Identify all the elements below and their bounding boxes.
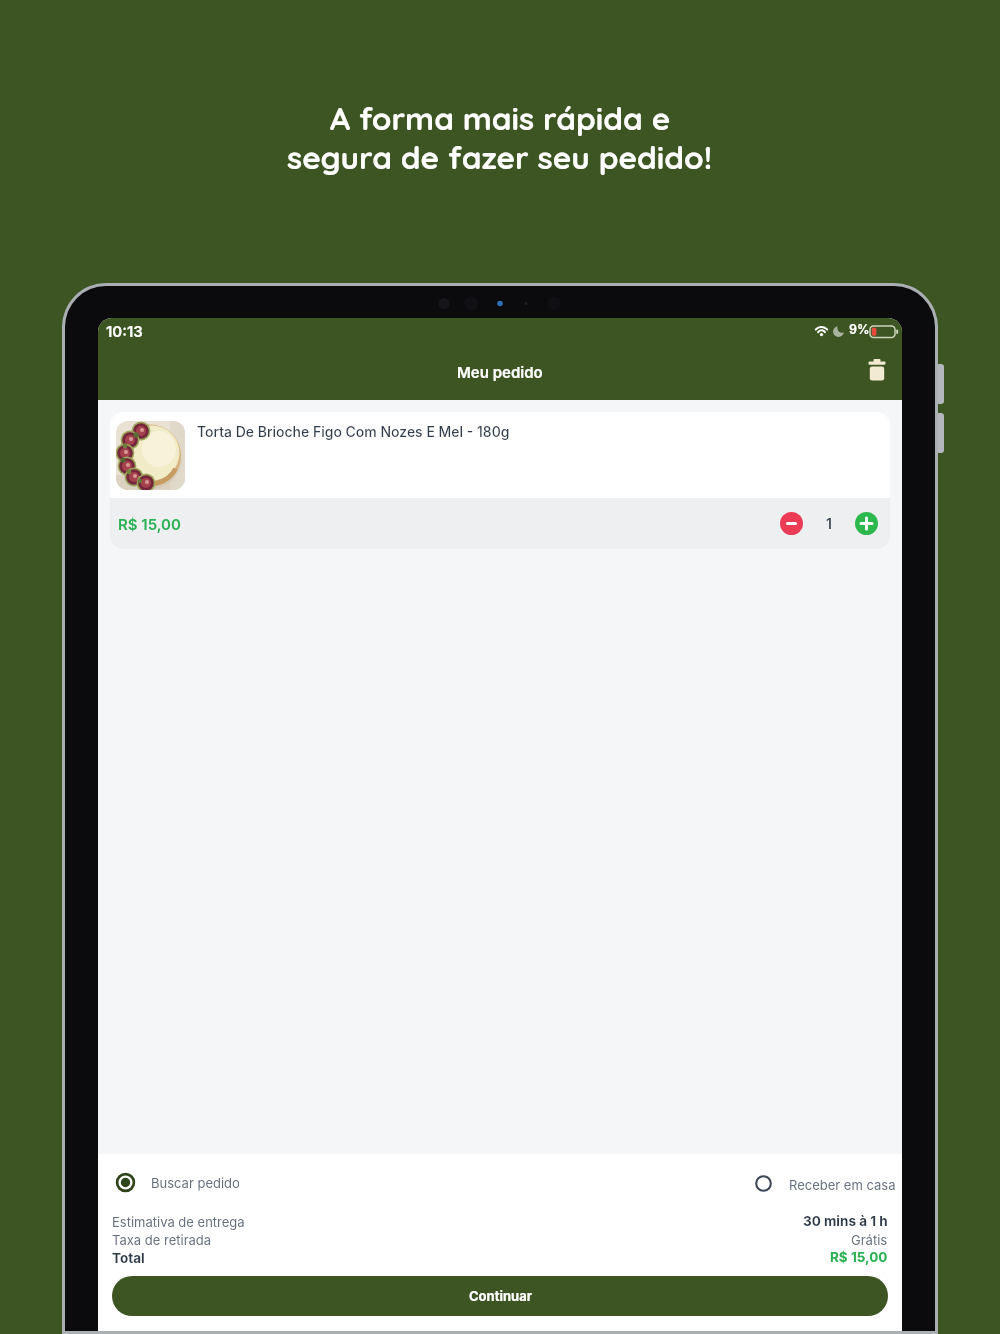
button[interactable]: Continuar [112,1276,888,1316]
staticText: Taxa de retirada [112,1232,212,1248]
staticText: R$ 15,00 [118,515,181,533]
staticText: 1 [826,515,832,532]
button[interactable] [855,512,878,535]
staticText: A forma mais rápida e [330,98,671,137]
button[interactable] [780,512,803,535]
staticText: Buscar pedido [151,1175,240,1191]
staticText: Torta De Brioche Figo Com Nozes E Mel - … [197,423,510,440]
staticText: 30 mins à 1 h [803,1213,888,1229]
staticText: Continuar [469,1288,532,1304]
staticText: R$ 15,00 [830,1249,888,1265]
button[interactable]: Buscar pedido [108,1166,288,1200]
button[interactable]: Receber em casa [742,1167,894,1201]
staticText: Estimativa de entrega [112,1214,245,1230]
button[interactable] [868,359,892,385]
staticText: 10:13 [106,322,143,340]
staticText: Meu pedido [457,363,543,381]
staticText: Grátis [851,1232,888,1248]
staticText: 9% [849,322,870,337]
staticText: Total [112,1250,145,1266]
staticText: segura de fazer seu pedido! [287,137,713,176]
staticText: Receber em casa [789,1177,896,1193]
